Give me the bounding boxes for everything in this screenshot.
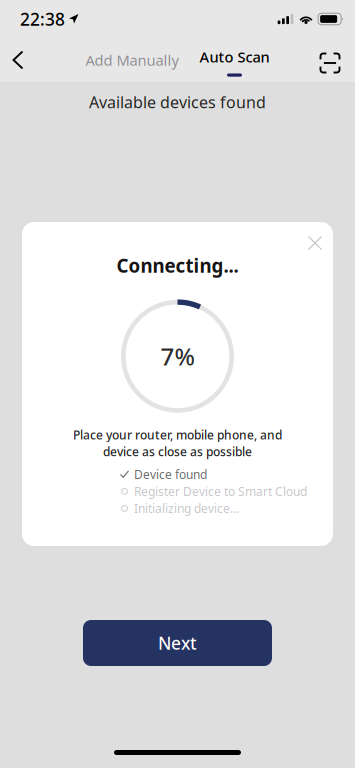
staticText: 7%	[160, 340, 194, 372]
staticText: Device found	[134, 466, 207, 482]
staticText: 22:38	[20, 7, 65, 30]
staticText: Next	[158, 631, 197, 654]
staticText: Register Device to Smart Cloud	[134, 483, 307, 499]
button[interactable]: Add Manually	[81, 38, 182, 82]
staticText: Add Manually	[85, 50, 178, 70]
button[interactable]: Scan QR code	[311, 38, 355, 82]
staticText: Connecting...	[116, 253, 238, 278]
staticText: Auto Scan	[199, 47, 269, 66]
staticText: device as close as possible	[103, 444, 252, 460]
staticText: Place your router, mobile phone, and	[73, 427, 282, 443]
button[interactable]: Auto Scan	[182, 38, 273, 82]
staticText: Initializing device...	[134, 500, 239, 516]
button[interactable]: Next	[83, 620, 272, 666]
button[interactable]: Close	[299, 227, 331, 259]
button[interactable]: Back	[0, 38, 36, 82]
staticText: Available devices found	[89, 91, 266, 113]
